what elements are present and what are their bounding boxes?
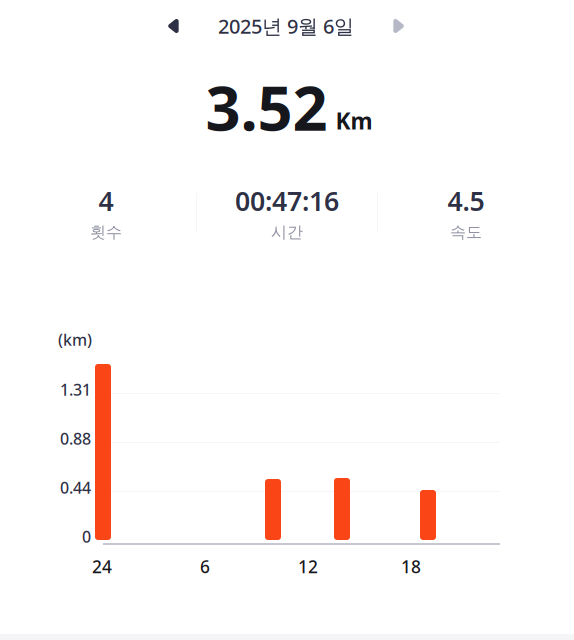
staticText: 1.31 [60,379,91,400]
button[interactable]: Previous day [150,7,194,45]
staticText: 0.88 [60,428,91,449]
staticText: 12 [298,555,318,578]
staticText: 00:47:16 [235,183,339,218]
staticText: 2025년 9월 6일 [218,13,354,39]
staticText: 6 [200,555,210,578]
button[interactable]: Next day [378,7,422,45]
staticText: 24 [92,555,112,578]
staticText: Km [335,106,372,136]
staticText: 18 [401,555,421,578]
staticText: 시간 [271,222,303,242]
staticText: (km) [58,329,92,350]
staticText: 4.5 [447,183,484,218]
staticText: 0 [82,526,91,547]
staticText: 4 [98,183,113,218]
staticText: 속도 [450,222,482,242]
staticText: 횟수 [90,222,122,242]
staticText: 3.52 [205,66,327,148]
staticText: 0.44 [60,477,91,498]
